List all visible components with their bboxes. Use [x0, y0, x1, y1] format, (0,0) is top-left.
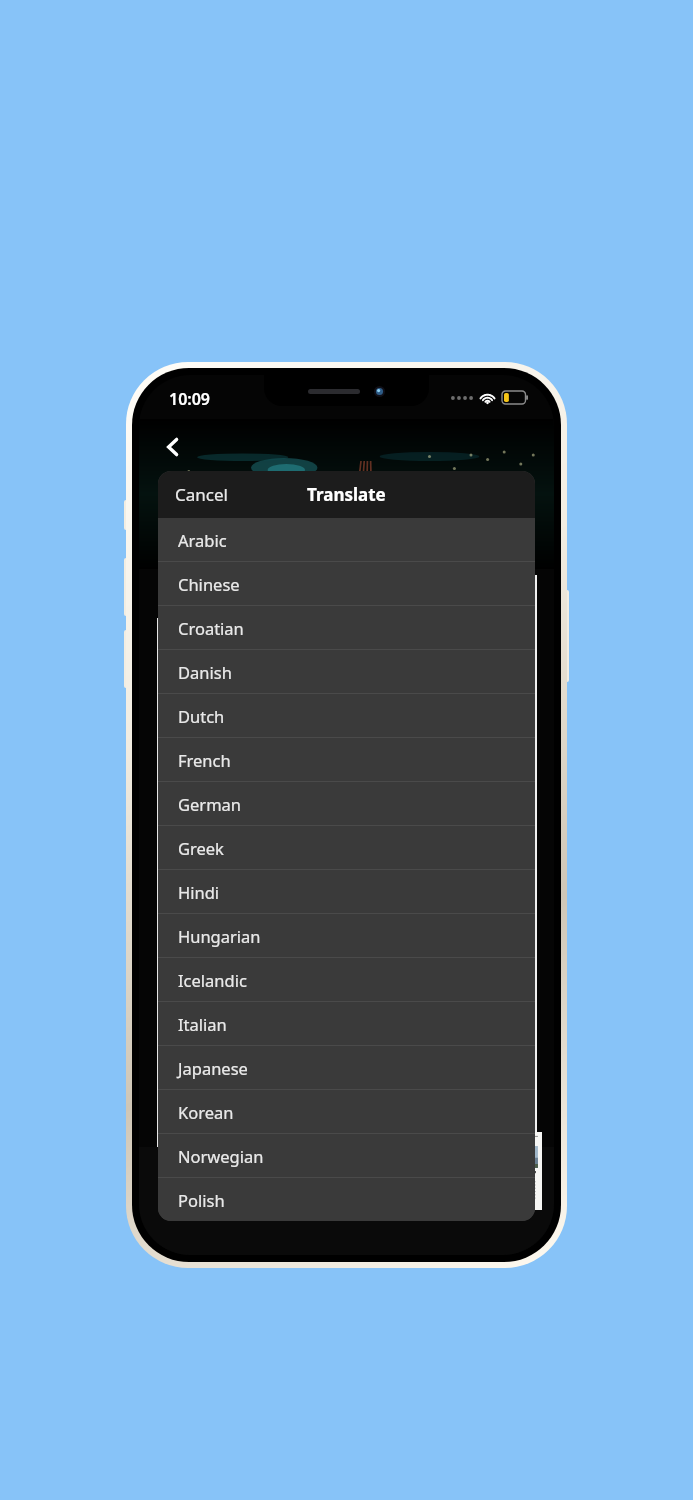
- staticText: Italian: [178, 1013, 227, 1035]
- button[interactable]: Icelandic: [158, 958, 535, 1001]
- staticText: Hungarian: [178, 925, 261, 947]
- staticText: Hindi: [178, 881, 220, 903]
- staticText: Chinese: [178, 573, 240, 595]
- button[interactable]: Back: [153, 427, 193, 467]
- button[interactable]: German: [158, 782, 535, 825]
- button[interactable]: Italian: [158, 1002, 535, 1045]
- button[interactable]: Croatian: [158, 606, 535, 649]
- staticText: Polish: [178, 1189, 225, 1211]
- button[interactable]: Chinese: [158, 562, 535, 605]
- button[interactable]: Danish: [158, 650, 535, 693]
- staticText: Icelandic: [178, 969, 247, 991]
- button[interactable]: Arabic: [158, 518, 535, 561]
- button[interactable]: Cancel: [158, 471, 245, 518]
- staticText: Korean: [178, 1101, 234, 1123]
- staticText: Greek: [178, 837, 224, 859]
- staticText: Croatian: [178, 617, 244, 639]
- button[interactable]: Norwegian: [158, 1134, 535, 1177]
- button[interactable]: Share: [161, 1151, 205, 1195]
- staticText: Japanese: [178, 1057, 248, 1079]
- staticText: German: [178, 793, 242, 815]
- staticText: Cancel: [175, 483, 228, 506]
- staticText: Danish: [178, 661, 232, 683]
- button[interactable]: Dutch: [158, 694, 535, 737]
- staticText: Translate: [307, 483, 386, 506]
- button[interactable]: French: [158, 738, 535, 781]
- staticText: Arabic: [178, 529, 227, 551]
- button[interactable]: Greek: [158, 826, 535, 869]
- staticText: Dutch: [178, 705, 225, 727]
- button[interactable]: Bookmark: [238, 1151, 282, 1195]
- staticText: 10:09: [169, 388, 211, 410]
- staticText: French: [178, 749, 231, 771]
- button[interactable]: Korean: [158, 1090, 535, 1133]
- button[interactable]: Hindi: [158, 870, 535, 913]
- button[interactable]: Hungarian: [158, 914, 535, 957]
- staticText: Norwegian: [178, 1145, 264, 1167]
- button[interactable]: Polish: [158, 1178, 535, 1221]
- button[interactable]: Japanese: [158, 1046, 535, 1089]
